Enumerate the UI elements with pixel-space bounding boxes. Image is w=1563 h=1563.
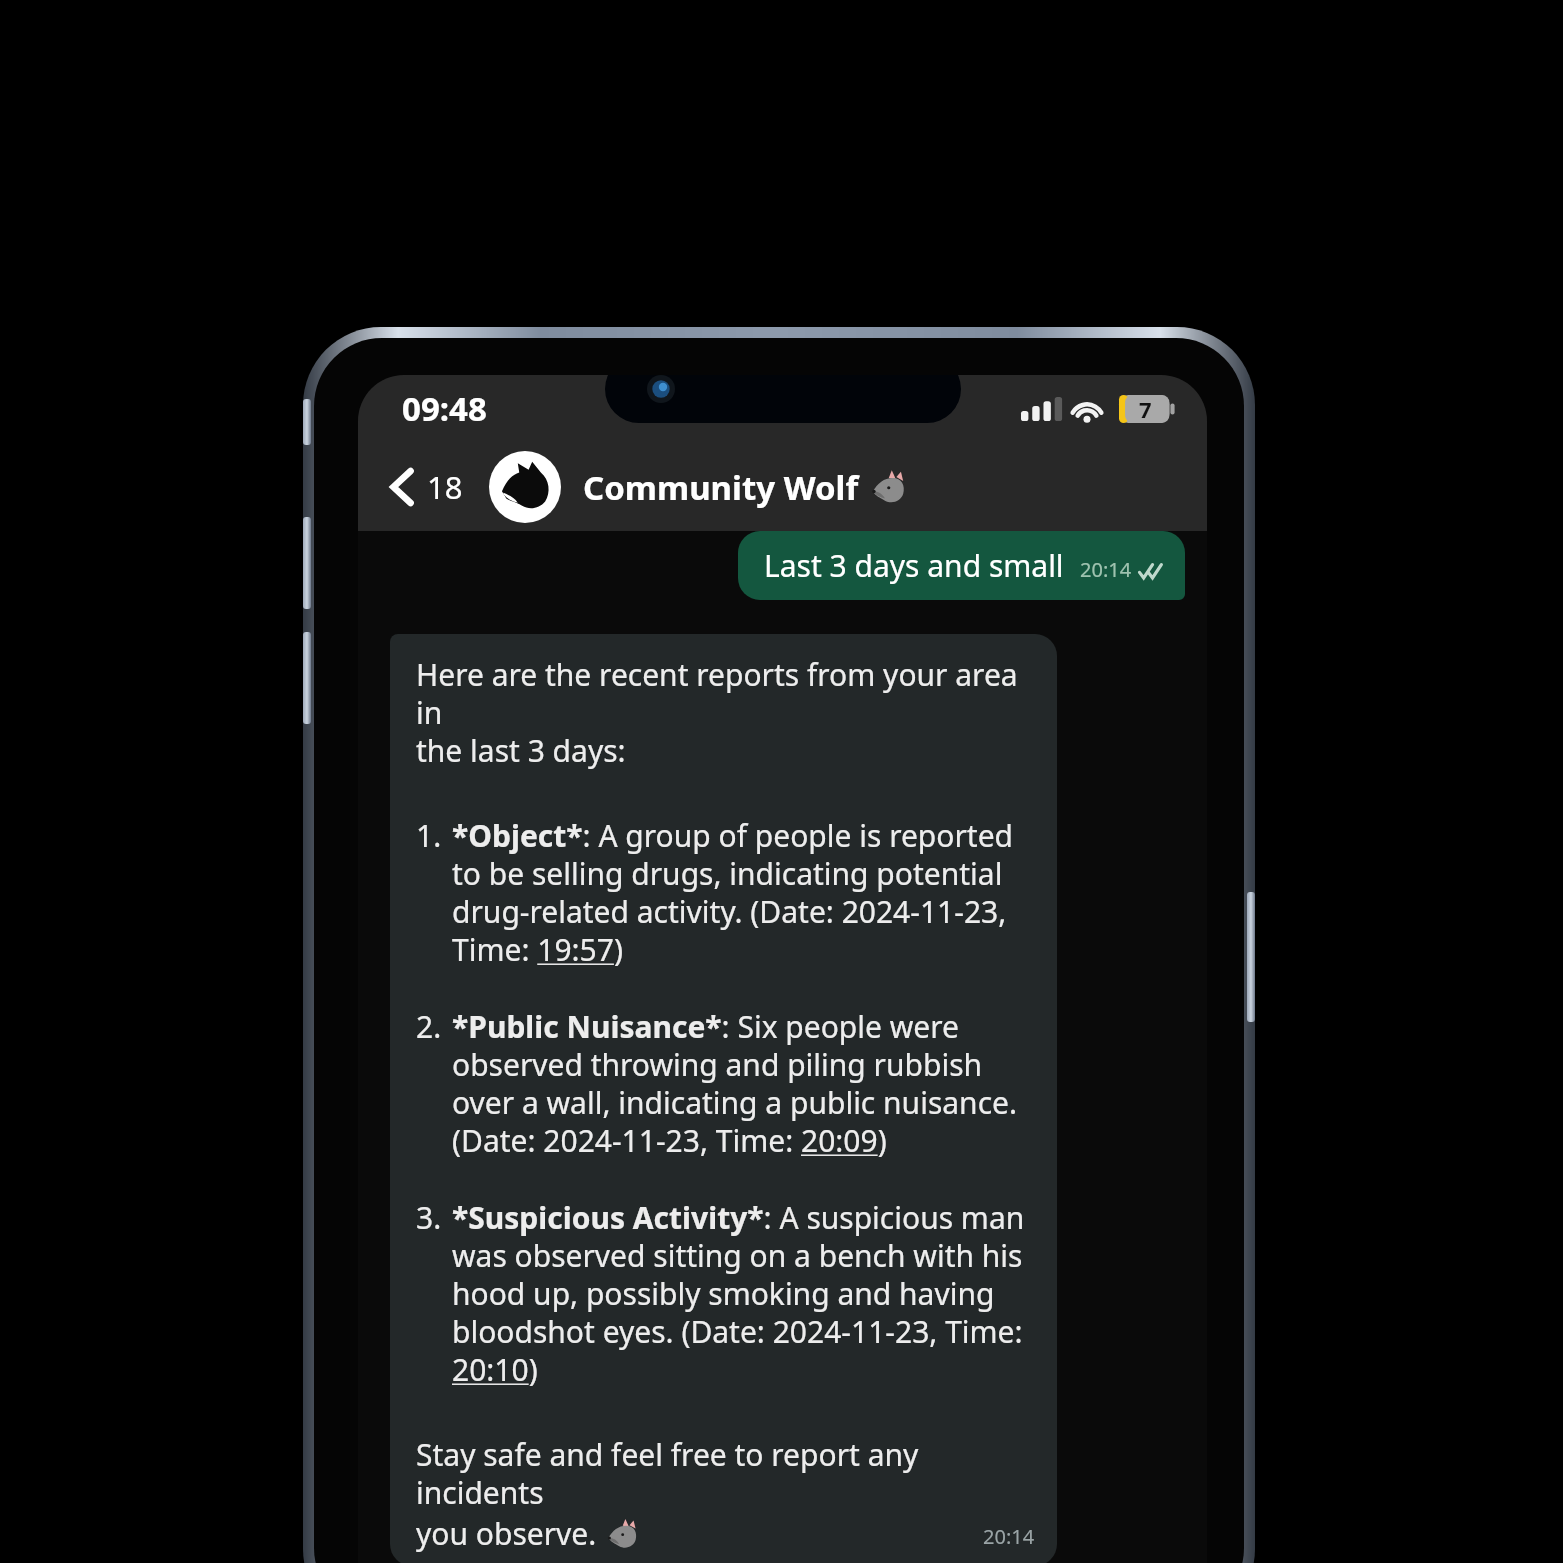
button[interactable]: Back, 18 unread: [384, 460, 469, 514]
staticText: *Suspicious Activity*: A suspicious man …: [452, 1197, 1035, 1390]
staticText: Last 3 days and small: [764, 545, 1064, 586]
staticText: *Object*: A group of people is reported …: [452, 815, 1035, 970]
staticText: 3.: [416, 1197, 452, 1238]
staticText: Community Wolf: [583, 465, 859, 510]
staticText: 7: [1139, 394, 1152, 424]
staticText: you observe.: [416, 1513, 605, 1554]
staticText: 2.: [416, 1006, 452, 1047]
staticText: Here are the recent reports from your ar…: [416, 654, 1035, 771]
staticText: Stay safe and feel free to report any in…: [416, 1434, 975, 1513]
staticText: 18: [427, 466, 463, 508]
button[interactable]: Last 3 days and small: [738, 531, 1185, 600]
staticText: *Public Nuisance*: Six people were obser…: [452, 1006, 1035, 1161]
staticText: 20:14: [1080, 556, 1132, 583]
staticText: 09:48: [402, 386, 487, 431]
staticText: 20:14: [983, 1523, 1035, 1550]
button[interactable]: Here are the recent reports from your ar…: [390, 634, 1057, 1563]
staticText: 1.: [416, 815, 452, 856]
button[interactable]: Community Wolf: [489, 447, 1189, 527]
